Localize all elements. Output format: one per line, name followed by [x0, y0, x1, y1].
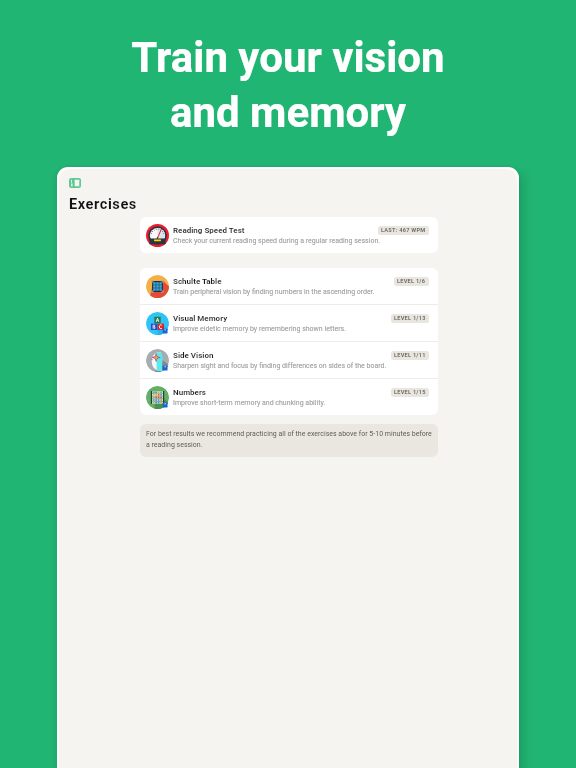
staticText: LAST: 467 WPM [381, 227, 426, 234]
button[interactable]: Side Vision [140, 342, 438, 378]
button[interactable]: Schulte Table [140, 268, 438, 304]
staticText: Numbers [173, 388, 206, 397]
staticText: Schulte Table [173, 277, 222, 286]
staticText: LEVEL 1/13 [394, 315, 426, 322]
button[interactable]: Reading Speed Test [140, 217, 438, 253]
staticText: Visual Memory [173, 314, 228, 323]
staticText: Side Vision [173, 351, 214, 360]
staticText: Train your vision and memory [131, 33, 445, 137]
staticText: LEVEL 1/6 [397, 278, 426, 285]
staticText: Improve eidetic memory by remembering sh… [173, 325, 347, 333]
button[interactable]: Numbers [140, 379, 438, 415]
button[interactable]: Toggle sidebar [69, 178, 81, 188]
staticText: Check your current reading speed during … [173, 237, 381, 245]
staticText: For best results we recommend practicing… [146, 430, 434, 449]
button[interactable]: Visual Memory [140, 305, 438, 341]
staticText: LEVEL 1/15 [394, 389, 426, 396]
staticText: Improve short-term memory and chunking a… [173, 399, 326, 407]
staticText: Train peripheral vision by finding numbe… [173, 288, 375, 296]
staticText: Reading Speed Test [173, 226, 245, 235]
staticText: Exercises [69, 195, 137, 212]
staticText: Sharpen sight and focus by finding diffe… [173, 362, 387, 370]
staticText: LEVEL 1/11 [394, 352, 426, 359]
